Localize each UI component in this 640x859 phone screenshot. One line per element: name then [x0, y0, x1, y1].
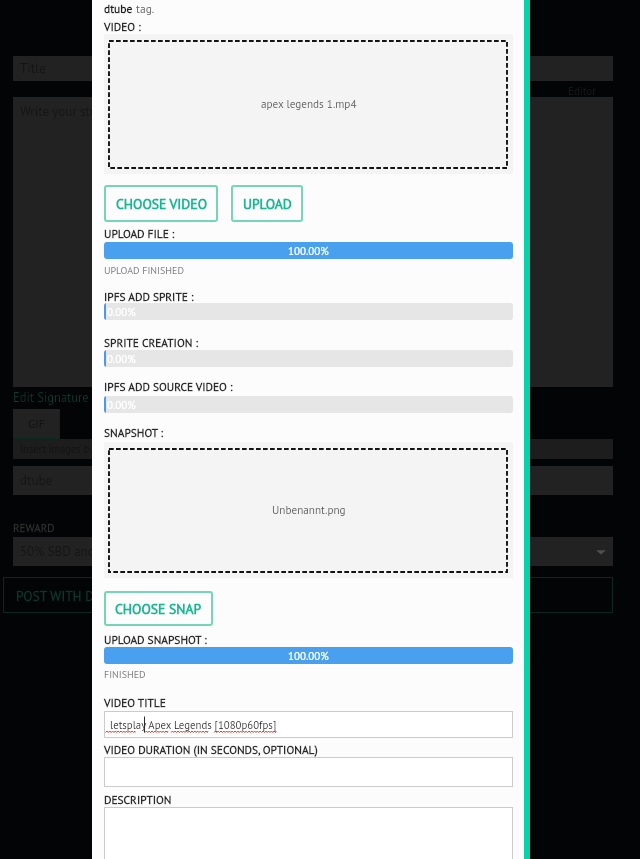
button[interactable]: Edit Signature — [13, 389, 89, 405]
button[interactable]: dtube — [13, 466, 613, 495]
staticText: IPFS ADD SOURCE VIDEO : — [104, 379, 233, 394]
staticText: SNAPSHOT : — [104, 425, 164, 440]
staticText: 0.00% — [107, 398, 136, 412]
staticText: 0.00% — [107, 352, 136, 366]
staticText: 50% SBD and 50% STEEM POWER — [20, 543, 209, 560]
staticText: FINISHED — [104, 668, 146, 681]
button[interactable]: GIF — [13, 409, 60, 439]
staticText: VIDEO DURATION (IN SECONDS, OPTIONAL) — [104, 742, 318, 757]
button[interactable]: UPLOAD — [231, 185, 303, 222]
button[interactable]: CHOOSE VIDEO — [104, 185, 218, 222]
staticText: 100.00% — [288, 649, 329, 663]
staticText: Write your story... — [20, 103, 117, 120]
staticText: IPFS ADD SPRITE : — [104, 289, 194, 304]
staticText: apex legends 1.mp4 — [261, 97, 357, 111]
other: Open reward dropdown — [596, 547, 606, 557]
button[interactable]: letsplay Apex Legends [1080p60fps] — [104, 711, 513, 738]
staticText: DESCRIPTION — [104, 792, 172, 807]
staticText: 0.00% — [107, 305, 136, 319]
staticText: CHOOSE SNAP — [115, 600, 202, 618]
staticText: dtube — [20, 472, 53, 489]
staticText: UPLOAD FINISHED — [104, 264, 184, 277]
staticText: 100.00% — [288, 244, 329, 258]
staticText: UPLOAD FILE : — [104, 226, 175, 241]
staticText: UPLOAD SNAPSHOT : — [104, 632, 207, 647]
staticText: POST WITH DTUBE — [16, 587, 125, 604]
staticText: REWARD — [13, 521, 55, 535]
staticText: SPRITE CREATION : — [104, 335, 198, 350]
button[interactable] — [104, 807, 513, 859]
staticText: tag. — [133, 1, 155, 16]
staticText: CHOOSE VIDEO — [116, 195, 207, 213]
button[interactable]: Write your story... — [13, 97, 613, 387]
button[interactable]: Editor — [568, 84, 597, 98]
button[interactable]: POST WITH DTUBE — [3, 577, 613, 613]
staticText: dtube — [104, 1, 133, 16]
staticText: VIDEO TITLE — [104, 695, 166, 710]
button[interactable]: Title — [13, 56, 613, 81]
staticText: Insert images by dragging & dropping — [20, 442, 191, 456]
staticText: GIF — [28, 416, 46, 432]
staticText: UPLOAD — [243, 195, 292, 213]
button[interactable] — [104, 757, 513, 787]
button[interactable]: Unbenannt.png — [104, 442, 513, 578]
button[interactable]: 50% SBD and 50% STEEM POWER — [13, 537, 613, 566]
staticText: Title — [20, 60, 46, 77]
button[interactable]: apex legends 1.mp4 — [104, 34, 513, 174]
staticText: Unbenannt.png — [272, 503, 346, 517]
button[interactable]: CHOOSE SNAP — [104, 591, 213, 626]
staticText: letsplay Apex Legends [1080p60fps] — [110, 718, 277, 732]
staticText: VIDEO : — [104, 19, 141, 34]
